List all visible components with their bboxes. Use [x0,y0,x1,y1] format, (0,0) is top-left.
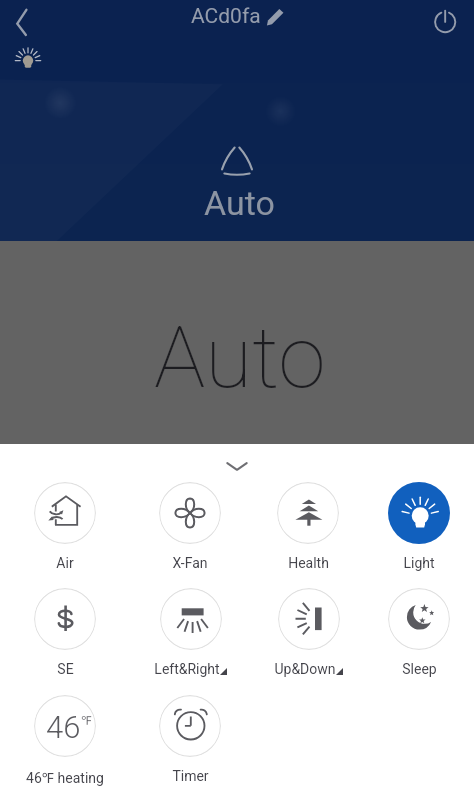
staticText: Sleep [402,661,437,677]
button[interactable]: Collapse panel [217,454,257,478]
staticText: Up&Down [274,661,336,677]
button[interactable]: Light [364,477,474,577]
staticText: Auto [154,307,326,408]
button[interactable]: Back [5,3,43,41]
button[interactable]: Power [430,7,460,37]
staticText: ℉ [81,712,92,728]
button[interactable]: 46 [10,690,120,790]
button[interactable]: Timer [135,690,245,790]
staticText: Health [288,555,329,571]
staticText: 46℉ heating [26,768,104,787]
button[interactable]: X-Fan [135,477,245,577]
button[interactable]: SE [10,583,120,683]
button[interactable]: Left&Right [135,583,245,683]
button[interactable]: Light status [15,46,41,72]
button[interactable]: ACd0fa [191,4,284,29]
staticText: Auto [204,183,275,223]
staticText: Air [56,555,74,571]
staticText: X-Fan [172,555,208,571]
button[interactable]: Sleep [364,583,474,683]
button[interactable]: Health [253,477,363,577]
staticText: ACd0fa [191,4,261,29]
button[interactable]: Air [10,477,120,577]
staticText: Left&Right [154,661,220,677]
staticText: Light [403,555,435,571]
staticText: SE [57,661,74,677]
staticText: 46 [46,709,81,745]
button[interactable]: Up&Down [253,583,363,683]
staticText: Timer [172,768,209,784]
